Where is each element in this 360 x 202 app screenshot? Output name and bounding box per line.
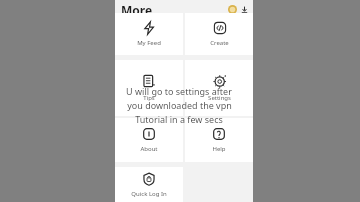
button[interactable]: Downloads <box>240 5 249 14</box>
staticText: More <box>121 2 153 15</box>
staticText: Create <box>210 39 229 47</box>
staticText: Tutorial in a few secs <box>135 113 223 125</box>
button[interactable]: Tips <box>115 60 183 116</box>
staticText: My Feed <box>137 39 161 47</box>
staticText: Tips <box>143 94 155 102</box>
button[interactable]: Create <box>185 13 253 55</box>
button[interactable]: My Feed <box>115 13 183 55</box>
button[interactable]: About <box>115 118 183 162</box>
button[interactable]: Quick Log In <box>115 167 183 202</box>
staticText: About <box>140 145 158 153</box>
button[interactable]: Help <box>185 118 253 162</box>
button[interactable]: Rewards <box>228 5 237 14</box>
staticText: Help <box>212 145 226 153</box>
staticText: you downloaded the vpn <box>127 99 232 111</box>
staticText: Quick Log In <box>131 190 167 198</box>
button[interactable]: Settings <box>185 60 253 116</box>
staticText: U will go to settings after <box>126 85 232 97</box>
staticText: Settings <box>208 94 231 102</box>
